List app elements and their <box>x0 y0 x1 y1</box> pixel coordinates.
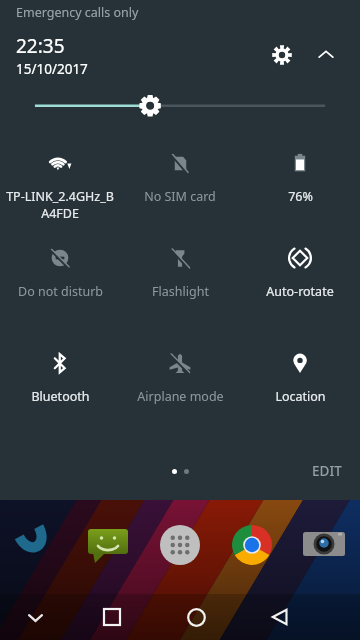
button[interactable]: Collapse <box>304 33 348 77</box>
button[interactable]: Do not disturb <box>0 233 120 338</box>
button[interactable]: Flashlight <box>120 233 240 338</box>
button[interactable]: Location <box>240 338 360 433</box>
staticText: 22:35 <box>16 33 65 59</box>
staticText: EDIT <box>312 462 342 480</box>
button[interactable]: Hide <box>0 594 70 640</box>
button[interactable]: No SIM card <box>120 138 240 233</box>
staticText: Flashlight <box>152 283 209 300</box>
button[interactable]: Messaging <box>72 505 144 585</box>
staticText: Auto-rotate <box>266 283 334 300</box>
button[interactable]: Brightness <box>0 86 360 124</box>
button[interactable]: Home <box>154 594 238 640</box>
staticText: No SIM card <box>144 188 216 205</box>
button[interactable]: Settings <box>260 33 304 77</box>
button[interactable]: Phone <box>0 505 72 585</box>
button[interactable]: Bluetooth <box>0 338 120 433</box>
staticText: TP-LINK_2.4GHz_BA4FDE <box>6 188 114 221</box>
button[interactable]: Recents <box>70 594 154 640</box>
button[interactable]: 76% <box>240 138 360 233</box>
staticText: Bluetooth <box>31 388 90 405</box>
button[interactable]: Camera <box>288 505 360 585</box>
button[interactable]: Airplane mode <box>120 338 240 433</box>
staticText: Emergency calls only <box>16 4 139 21</box>
staticText: 15/10/2017 <box>16 60 88 78</box>
staticText: Airplane mode <box>137 388 224 405</box>
button[interactable]: Chrome <box>216 505 288 585</box>
button[interactable]: EDIT <box>294 452 360 490</box>
staticText: 76% <box>288 188 313 205</box>
button[interactable]: TP-LINK_2.4GHz_BA4FDE <box>0 138 120 233</box>
staticText: Location <box>275 388 326 405</box>
button[interactable]: All apps <box>144 505 216 585</box>
staticText: Do not disturb <box>18 283 103 300</box>
button[interactable]: Auto-rotate <box>240 233 360 338</box>
button[interactable]: Back <box>238 594 322 640</box>
